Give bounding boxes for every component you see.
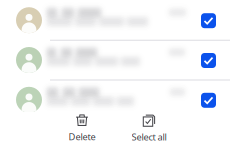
staticText: Select all — [131, 131, 166, 143]
button[interactable]: Delete — [51, 111, 113, 145]
button[interactable] — [0, 40, 230, 80]
button[interactable] — [0, 0, 230, 40]
staticText: Delete — [68, 131, 95, 143]
button[interactable] — [0, 80, 230, 120]
button[interactable]: Select all — [118, 111, 180, 145]
